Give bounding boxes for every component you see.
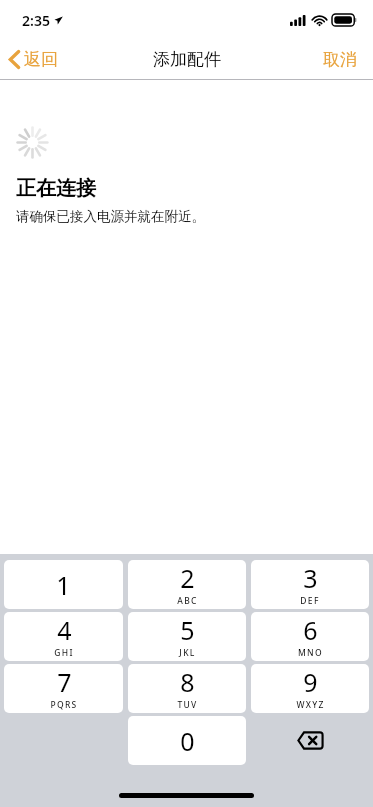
staticText: 9 xyxy=(303,665,318,699)
button[interactable]: 2 xyxy=(128,560,246,609)
staticText: 1 xyxy=(56,568,71,602)
button[interactable]: 返回 xyxy=(0,43,68,76)
staticText: 2 xyxy=(180,561,195,595)
button[interactable]: 9 xyxy=(251,664,369,713)
staticText: JKL xyxy=(179,647,196,659)
button[interactable]: 8 xyxy=(128,664,246,713)
staticText: TUV xyxy=(177,699,198,711)
staticText: 请确保已接入电源并就在附近。 xyxy=(16,208,205,225)
button[interactable]: 4 xyxy=(4,612,123,661)
staticText: ABC xyxy=(177,595,198,607)
staticText: PQRS xyxy=(50,699,78,711)
staticText: MNO xyxy=(298,647,323,659)
staticText: 0 xyxy=(180,724,195,758)
staticText: 4 xyxy=(57,613,72,647)
button[interactable]: 取消 xyxy=(307,43,373,76)
staticText: 8 xyxy=(180,665,195,699)
staticText: 添加配件 xyxy=(153,49,221,70)
staticText: 正在连接 xyxy=(16,176,96,201)
staticText: 取消 xyxy=(323,49,357,70)
button[interactable]: 1 xyxy=(4,560,123,609)
staticText: 5 xyxy=(180,613,195,647)
button[interactable]: 7 xyxy=(4,664,123,713)
staticText: 6 xyxy=(303,613,318,647)
button[interactable]: 0 xyxy=(128,716,246,765)
button[interactable]: 5 xyxy=(128,612,246,661)
staticText: 2:35 xyxy=(22,11,50,30)
staticText: 7 xyxy=(57,665,72,699)
button[interactable]: 6 xyxy=(251,612,369,661)
staticText: 返回 xyxy=(24,49,58,70)
staticText: 3 xyxy=(303,561,318,595)
button[interactable]: Delete xyxy=(251,716,369,765)
staticText: GHI xyxy=(54,647,74,659)
staticText: WXYZ xyxy=(296,699,325,711)
staticText: DEF xyxy=(300,595,320,607)
button[interactable]: 3 xyxy=(251,560,369,609)
